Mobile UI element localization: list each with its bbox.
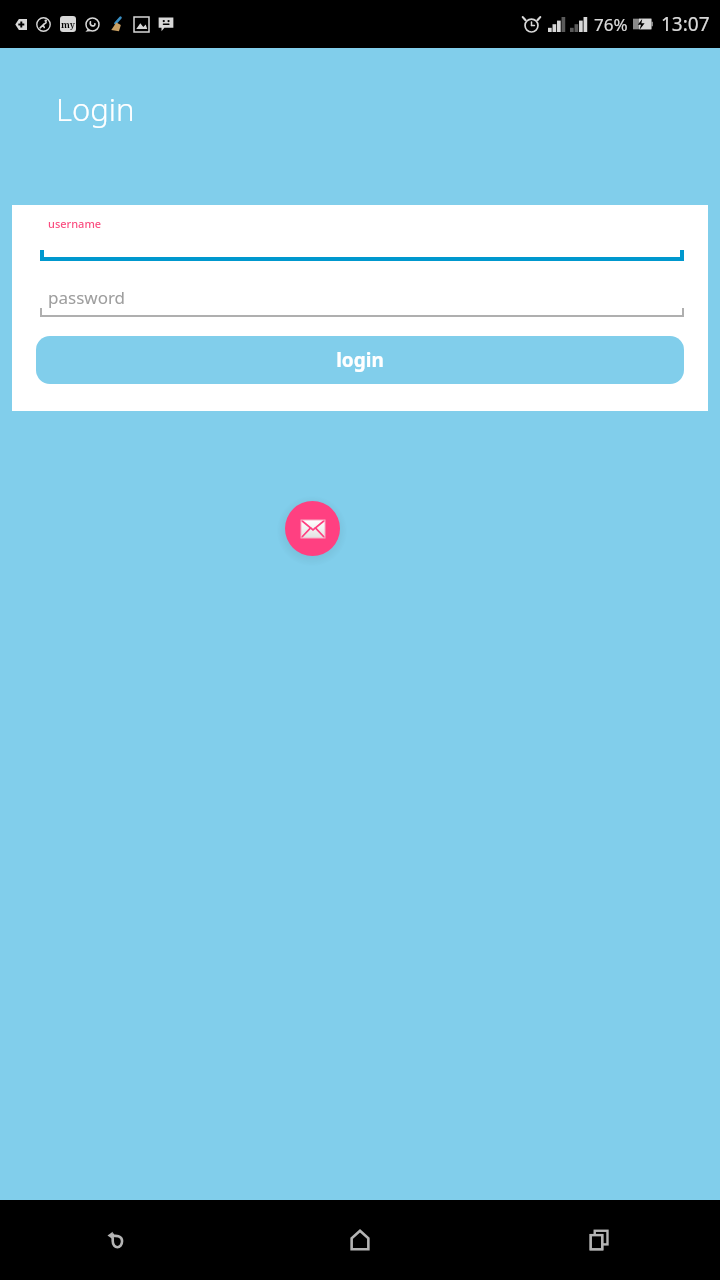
button[interactable]: Home — [240, 1200, 480, 1280]
staticText: password — [48, 286, 126, 309]
staticText: my — [61, 18, 75, 30]
button[interactable]: password — [24, 276, 696, 317]
button[interactable]: Compose mail — [285, 501, 340, 556]
staticText: login — [336, 347, 384, 373]
staticText: Login — [56, 88, 135, 130]
button[interactable]: login — [36, 336, 684, 384]
staticText: 13:07 — [661, 11, 710, 37]
staticText: username — [48, 216, 102, 231]
staticText: 76% — [594, 13, 628, 36]
button[interactable]: Back — [0, 1200, 240, 1280]
button[interactable]: username — [24, 214, 696, 261]
button[interactable]: Recent apps — [480, 1200, 720, 1280]
